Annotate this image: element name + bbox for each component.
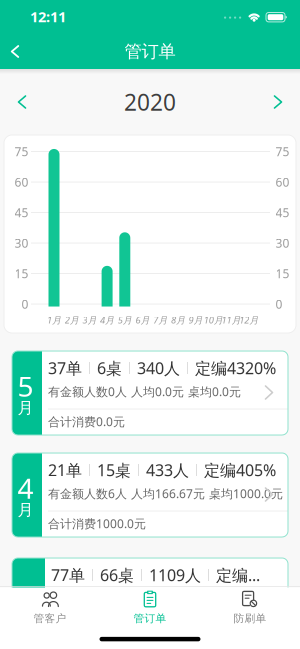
button[interactable]: 管订单: [100, 587, 200, 629]
staticText: 1月: [47, 314, 61, 326]
staticText: 定编4320%: [195, 357, 276, 379]
button[interactable]: 4: [12, 453, 288, 537]
staticText: 3: [20, 579, 36, 617]
staticText: 5: [17, 367, 33, 405]
staticText: 有金额人数0人 人均0.0元 桌均0.0元: [51, 590, 244, 606]
staticText: 433人: [146, 459, 189, 481]
button[interactable]: [7, 43, 23, 59]
staticText: 月: [17, 398, 33, 418]
staticText: 60: [275, 174, 289, 190]
staticText: 定编...: [216, 564, 260, 586]
staticText: 11月: [221, 314, 240, 326]
staticText: 管订单: [133, 612, 166, 625]
button[interactable]: 管客户: [0, 587, 100, 629]
staticText: 66桌: [100, 564, 134, 586]
button[interactable]: 3: [12, 558, 288, 642]
staticText: 3月: [82, 314, 96, 326]
staticText: 12:11: [30, 7, 66, 26]
staticText: 45: [14, 204, 28, 220]
staticText: 37单: [48, 357, 82, 379]
staticText: 月: [20, 610, 36, 630]
button[interactable]: 防刷单: [200, 587, 300, 629]
staticText: 15: [275, 265, 289, 281]
staticText: 340人: [137, 357, 180, 379]
staticText: 有金额人数6人 人均166.67元 桌均1000.0元: [48, 485, 283, 501]
staticText: 75: [275, 143, 289, 159]
staticText: 合计消费0.0元: [48, 413, 125, 429]
staticText: 防刷单: [233, 612, 266, 625]
staticText: 60: [14, 174, 28, 190]
staticText: 10月: [204, 314, 223, 326]
staticText: 月: [17, 500, 33, 520]
staticText: 77单: [51, 564, 85, 586]
staticText: 定编405%: [204, 459, 276, 481]
staticText: 30: [14, 235, 28, 251]
button[interactable]: [13, 93, 31, 111]
staticText: 45: [275, 204, 289, 220]
staticText: 2月: [65, 314, 79, 326]
button[interactable]: [269, 93, 287, 111]
staticText: 8月: [171, 314, 185, 326]
staticText: 9月: [189, 314, 203, 326]
button[interactable]: 5: [12, 351, 288, 435]
staticText: 2020: [124, 87, 176, 117]
staticText: 0: [275, 296, 282, 312]
staticText: 4: [17, 469, 33, 507]
staticText: 1109人: [149, 564, 201, 586]
staticText: 管订单: [124, 41, 175, 62]
staticText: 有金额人数0人 人均0.0元 桌均0.0元: [48, 383, 241, 399]
staticText: 12月: [239, 314, 258, 326]
staticText: 15桌: [97, 459, 131, 481]
staticText: 5月: [118, 314, 132, 326]
staticText: 75: [14, 143, 28, 159]
staticText: 0: [21, 296, 28, 312]
staticText: 30: [275, 235, 289, 251]
staticText: 管客户: [33, 612, 66, 625]
staticText: 21单: [48, 459, 82, 481]
staticText: 6月: [135, 314, 149, 326]
staticText: 6桌: [97, 357, 122, 379]
staticText: 7月: [153, 314, 167, 326]
staticText: 合计消费0.0元: [51, 620, 128, 636]
staticText: 15: [14, 265, 28, 281]
staticText: 4月: [100, 314, 114, 326]
staticText: 合计消费1000.0元: [48, 515, 146, 531]
